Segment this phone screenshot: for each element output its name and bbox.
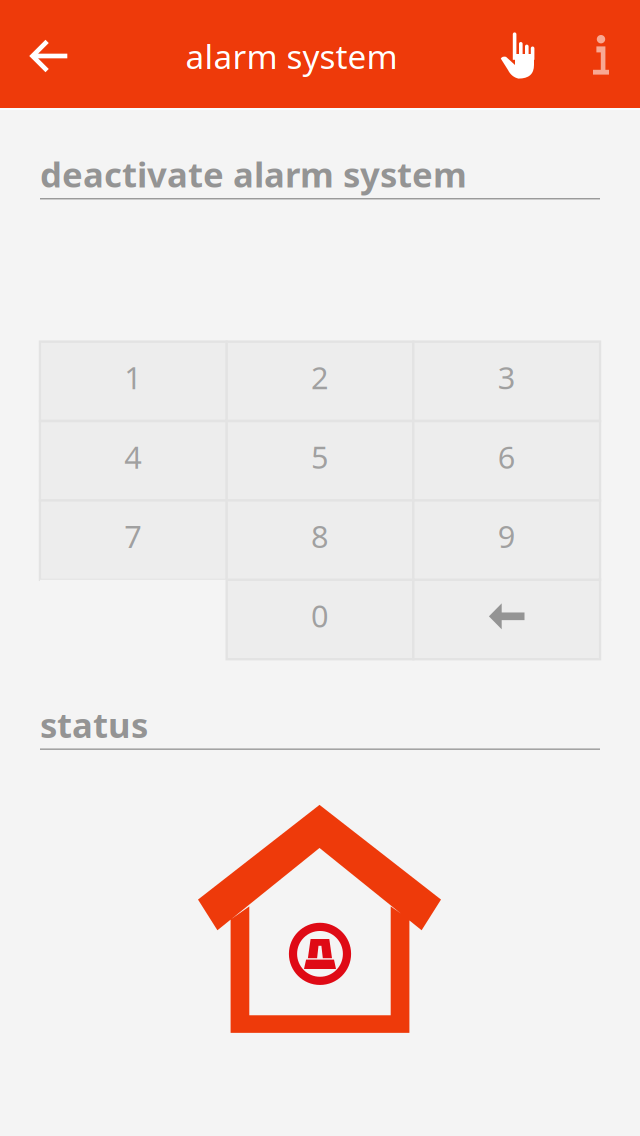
- button[interactable]: 2: [227, 342, 413, 421]
- staticText: deactivate alarm system: [40, 151, 467, 197]
- staticText: 7: [124, 516, 142, 556]
- staticText: 1: [124, 357, 142, 398]
- button[interactable]: Delete: [413, 580, 600, 659]
- staticText: 0: [311, 595, 329, 636]
- button[interactable]: 5: [227, 421, 413, 500]
- button[interactable]: 1: [40, 342, 227, 421]
- staticText: 4: [124, 436, 142, 477]
- button[interactable]: 7: [40, 500, 227, 580]
- staticText: alarm system: [185, 34, 397, 78]
- staticText: 8: [311, 516, 329, 556]
- button[interactable]: 3: [413, 342, 600, 421]
- button[interactable]: 9: [413, 500, 600, 580]
- button[interactable]: 6: [413, 421, 600, 500]
- button[interactable]: Back: [0, 0, 98, 108]
- staticText: 9: [498, 516, 516, 556]
- staticText: 5: [311, 436, 329, 477]
- staticText: 2: [311, 357, 329, 398]
- button[interactable]: Information: [562, 0, 640, 108]
- staticText: 6: [498, 436, 516, 477]
- staticText: status: [40, 701, 148, 747]
- staticText: 3: [498, 357, 516, 398]
- button[interactable]: 4: [40, 421, 227, 500]
- button[interactable]: Touch mode: [476, 0, 562, 108]
- button[interactable]: 8: [227, 500, 413, 580]
- button[interactable]: 0: [227, 580, 413, 659]
